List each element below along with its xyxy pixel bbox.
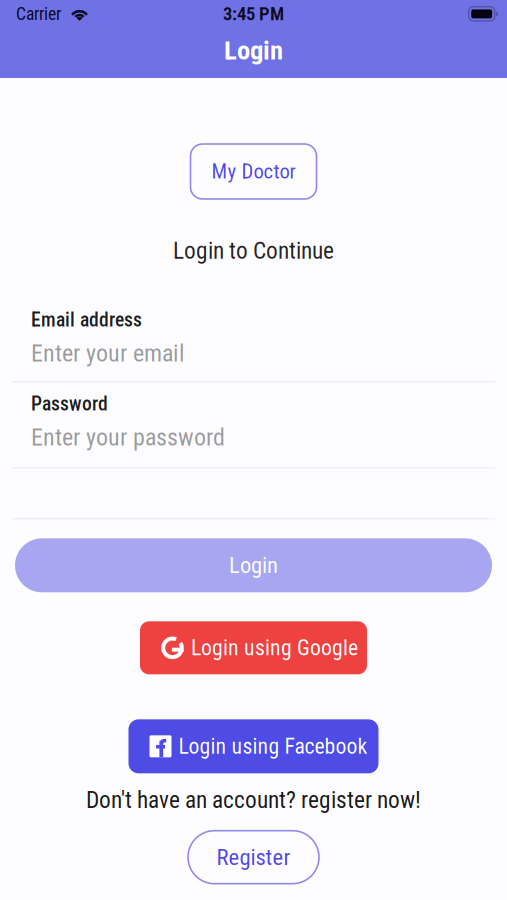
button[interactable]: Login using Google xyxy=(140,621,367,674)
staticText: Login using Google xyxy=(191,635,358,661)
staticText: Login to Continue xyxy=(173,237,334,264)
button[interactable]: Register xyxy=(188,831,319,884)
staticText: Enter your password xyxy=(31,423,225,451)
staticText: Register xyxy=(216,844,290,870)
button[interactable]: Login using Facebook xyxy=(128,719,378,773)
button[interactable]: Login xyxy=(15,538,492,592)
staticText: My Doctor xyxy=(211,159,295,184)
staticText: Password xyxy=(31,392,108,415)
staticText: Login xyxy=(229,552,278,579)
staticText: 3:45 PM xyxy=(223,3,284,25)
staticText: Enter your email xyxy=(31,339,185,367)
staticText: Carrier xyxy=(16,4,61,24)
staticText: Login xyxy=(224,35,283,66)
staticText: Login using Facebook xyxy=(178,734,367,759)
staticText: Don't have an account? register now! xyxy=(86,786,421,814)
button[interactable]: My Doctor xyxy=(190,144,316,199)
staticText: Email address xyxy=(31,308,142,331)
